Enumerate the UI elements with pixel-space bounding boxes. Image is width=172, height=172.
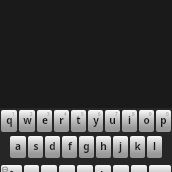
staticText: b — [100, 168, 107, 172]
button[interactable]: z — [24, 165, 39, 172]
staticText: 7 — [115, 111, 118, 117]
staticText: p — [160, 113, 167, 127]
button[interactable]: u — [105, 110, 120, 132]
staticText: a — [15, 139, 21, 153]
staticText: j — [119, 139, 122, 153]
button[interactable]: g — [79, 136, 94, 158]
staticText: w — [23, 113, 32, 127]
staticText: 8 — [132, 111, 135, 117]
button[interactable]: q — [1, 110, 17, 132]
button[interactable]: v — [77, 165, 93, 172]
button[interactable]: s — [28, 136, 43, 158]
staticText: d — [49, 139, 56, 153]
staticText: z — [29, 168, 34, 172]
staticText: q — [6, 113, 13, 127]
button[interactable]: m — [131, 165, 147, 172]
staticText: 9 — [149, 111, 152, 117]
staticText: y — [93, 113, 99, 127]
button[interactable]: k — [130, 136, 145, 158]
staticText: e — [42, 113, 48, 127]
staticText: g — [83, 139, 90, 153]
staticText: o — [143, 113, 150, 127]
button[interactable]: x — [41, 165, 57, 172]
button[interactable]: n — [113, 165, 129, 172]
button[interactable]: r — [54, 110, 69, 132]
button[interactable]: e — [37, 110, 52, 132]
staticText: r — [59, 113, 64, 127]
staticText: l — [153, 139, 156, 153]
staticText: m — [134, 168, 144, 172]
button[interactable]: a — [10, 136, 26, 158]
button[interactable]: b — [95, 165, 111, 172]
button[interactable]: c — [59, 165, 75, 172]
staticText: k — [134, 139, 141, 153]
button[interactable]: d — [45, 136, 60, 158]
button[interactable]: i — [122, 110, 137, 132]
staticText: 0 — [166, 111, 169, 117]
staticText: i — [128, 113, 131, 127]
staticText: 4 — [64, 111, 67, 117]
button[interactable]: l — [147, 136, 162, 158]
staticText: 5 — [81, 111, 84, 117]
button[interactable]: p — [156, 110, 171, 132]
staticText: n — [118, 168, 125, 172]
button[interactable]: o — [139, 110, 154, 132]
button[interactable]: t — [71, 110, 86, 132]
staticText: s — [33, 139, 39, 153]
button[interactable]: w — [19, 110, 35, 132]
staticText: 1 — [12, 111, 15, 117]
staticText: v — [82, 168, 88, 172]
staticText: x — [46, 168, 52, 172]
staticText: t — [76, 113, 81, 127]
button[interactable]: y — [88, 110, 103, 132]
button[interactable]: Shift — [1, 165, 22, 172]
staticText: 2 — [30, 111, 33, 117]
staticText: h — [100, 139, 107, 153]
staticText: f — [68, 139, 72, 153]
button[interactable]: h — [96, 136, 111, 158]
staticText: 3 — [47, 111, 50, 117]
staticText: u — [109, 113, 116, 127]
button[interactable]: f — [62, 136, 77, 158]
staticText: c — [64, 168, 70, 172]
button[interactable]: Backspace — [149, 165, 171, 172]
button[interactable]: j — [113, 136, 128, 158]
staticText: 6 — [98, 111, 101, 117]
